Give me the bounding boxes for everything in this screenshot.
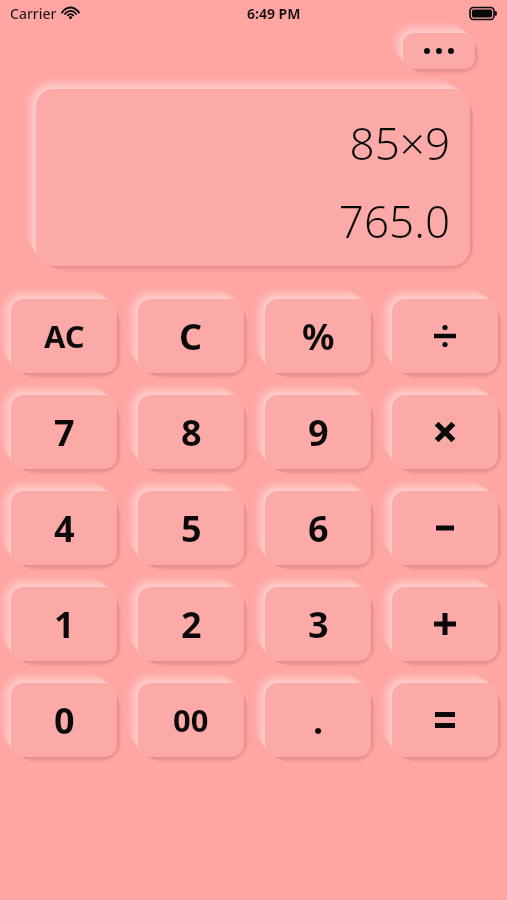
button[interactable]: 4: [11, 491, 117, 565]
staticText: 2: [181, 600, 202, 649]
staticText: AC: [44, 315, 85, 357]
staticText: 8: [181, 408, 202, 457]
button[interactable]: 3: [265, 587, 371, 661]
button[interactable]: 0: [11, 683, 117, 757]
button[interactable]: .: [265, 683, 371, 757]
staticText: 6: [308, 504, 329, 553]
staticText: 0: [54, 696, 75, 745]
button[interactable]: 5: [138, 491, 244, 565]
staticText: 6:49 PM: [247, 4, 301, 23]
button[interactable]: Add: [392, 587, 498, 661]
button[interactable]: More options: [403, 33, 475, 69]
button[interactable]: 6: [265, 491, 371, 565]
button[interactable]: %: [265, 299, 371, 373]
button[interactable]: 1: [11, 587, 117, 661]
staticText: 00: [173, 699, 209, 741]
staticText: 9: [308, 408, 329, 457]
button[interactable]: Multiply: [392, 395, 498, 469]
staticText: C: [179, 312, 203, 361]
staticText: 7: [54, 408, 75, 457]
staticText: 1: [54, 600, 75, 649]
staticText: 3: [308, 600, 329, 649]
staticText: 4: [54, 504, 75, 553]
button[interactable]: C: [138, 299, 244, 373]
staticText: %: [302, 312, 335, 361]
staticText: .: [313, 696, 324, 745]
button[interactable]: 9: [265, 395, 371, 469]
staticText: 85×9: [349, 113, 450, 173]
staticText: 5: [181, 504, 202, 553]
button[interactable]: 00: [138, 683, 244, 757]
button[interactable]: Divide: [392, 299, 498, 373]
staticText: Carrier: [10, 4, 57, 23]
button[interactable]: AC: [11, 299, 117, 373]
staticText: 765.0: [338, 191, 450, 251]
button[interactable]: 8: [138, 395, 244, 469]
button[interactable]: Subtract: [392, 491, 498, 565]
button[interactable]: 7: [11, 395, 117, 469]
button[interactable]: 2: [138, 587, 244, 661]
button[interactable]: Equals: [392, 683, 498, 757]
